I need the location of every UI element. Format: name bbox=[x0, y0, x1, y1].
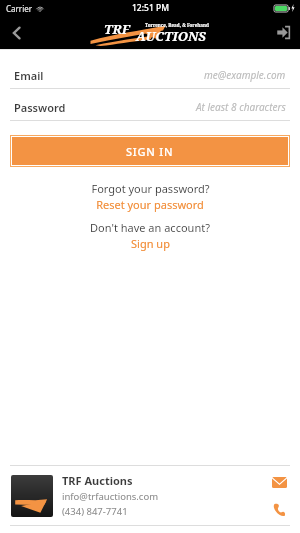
staticText: Password bbox=[14, 100, 66, 115]
button[interactable]: Password bbox=[0, 94, 300, 121]
button[interactable]: Call bbox=[269, 499, 289, 519]
staticText: Carrier bbox=[6, 3, 33, 14]
button[interactable]: Sign in bbox=[266, 16, 300, 49]
staticText: Forgot your password? bbox=[91, 181, 210, 196]
staticText: Torrence, Read, & Forehand bbox=[145, 22, 209, 28]
staticText: SIGN IN bbox=[126, 144, 174, 159]
staticText: TRF bbox=[104, 20, 130, 38]
button[interactable]: Email bbox=[0, 62, 300, 89]
staticText: info@trfauctions.com bbox=[62, 490, 159, 503]
staticText: Don't have an account? bbox=[90, 220, 210, 235]
button[interactable]: Email bbox=[269, 472, 289, 492]
staticText: 12:51 PM bbox=[132, 2, 169, 14]
button[interactable]: SIGN IN bbox=[12, 137, 288, 165]
staticText: (434) 847-7741 bbox=[62, 505, 128, 518]
staticText: me@example.com bbox=[204, 68, 286, 82]
button[interactable]: Reset your password bbox=[96, 197, 204, 212]
staticText: At least 8 characters bbox=[196, 100, 286, 114]
button[interactable]: TRF Auctions logo bbox=[11, 475, 53, 517]
staticText: Email bbox=[14, 68, 44, 83]
staticText: Sign up bbox=[131, 236, 170, 251]
button[interactable]: Sign up bbox=[131, 236, 170, 251]
staticText: TRF Auctions bbox=[62, 473, 133, 488]
staticText: Reset your password bbox=[96, 197, 204, 212]
staticText: AUCTIONS bbox=[136, 27, 206, 45]
button[interactable]: Back bbox=[0, 16, 34, 49]
